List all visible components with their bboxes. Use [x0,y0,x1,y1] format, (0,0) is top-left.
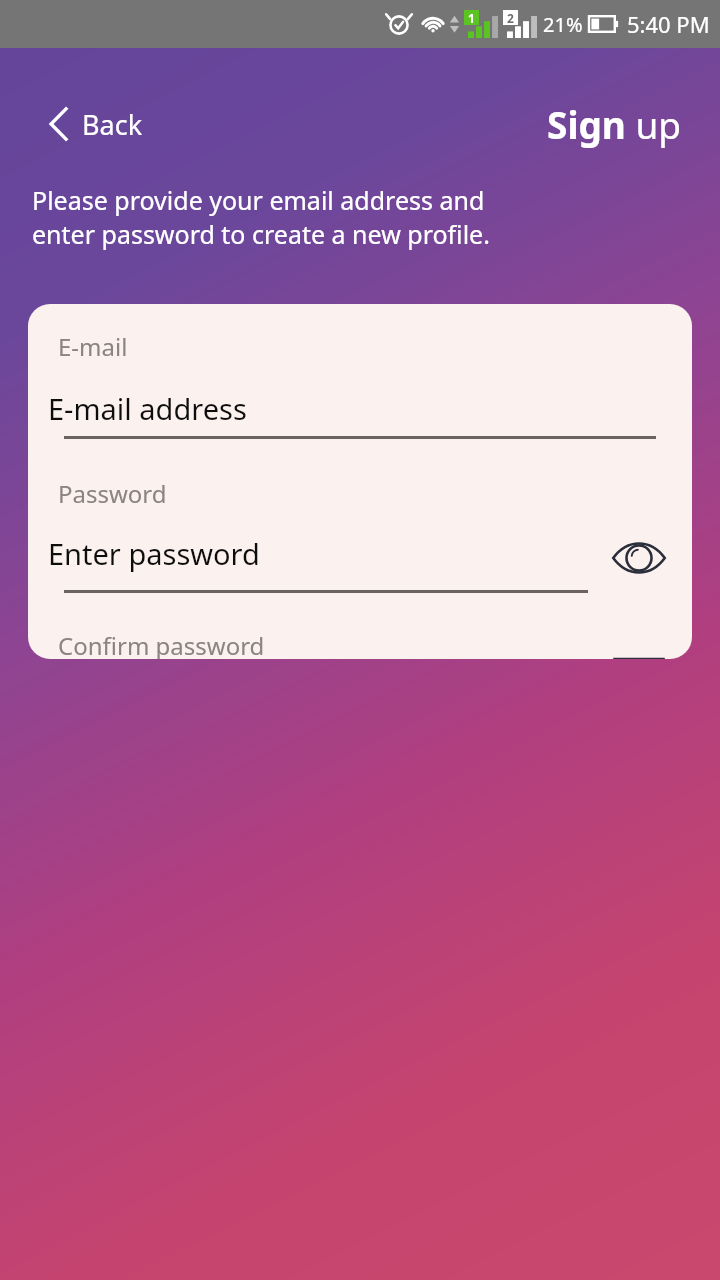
staticText: 1 [468,10,475,25]
staticText: Back [82,106,143,143]
staticText: Please provide your email address and en… [32,183,490,252]
button[interactable]: Show password [608,534,670,582]
staticText: Password [58,477,167,510]
button[interactable]: Back [40,99,151,149]
staticText: 2 [507,10,514,25]
staticText: E-mail [58,330,128,363]
staticText: Confirm password [58,629,265,659]
staticText: E-mail address [48,389,247,428]
staticText: 5:40 PM [627,9,710,39]
staticText: 21% [543,11,583,38]
staticText: Enter password [48,534,260,573]
button[interactable]: Enter password [46,534,674,573]
staticText: Sign up [547,99,682,149]
button[interactable]: E-mail address [46,389,674,428]
